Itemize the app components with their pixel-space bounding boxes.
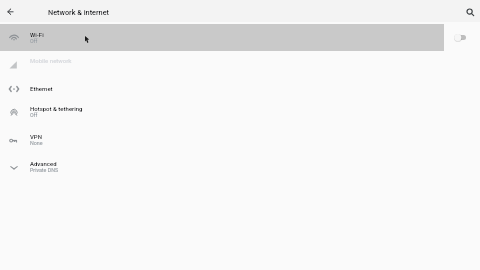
staticText: Advanced	[30, 160, 57, 167]
button[interactable]: Wi-Fi on/off	[452, 31, 470, 44]
button[interactable]: Advanced	[0, 153, 480, 180]
button[interactable]: Navigate up	[7, 8, 14, 15]
staticText: Off	[30, 38, 38, 44]
staticText: Off	[30, 112, 38, 118]
button[interactable]: Wi-Fi	[0, 24, 480, 51]
staticText: None	[30, 140, 43, 146]
staticText: Hotspot & tethering	[30, 105, 83, 112]
button[interactable]: Hotspot & tethering	[0, 98, 480, 125]
staticText: VPN	[30, 133, 42, 140]
button[interactable]: Search settings	[466, 8, 475, 17]
staticText: Mobile network	[30, 57, 72, 64]
staticText: Private DNS	[30, 167, 59, 173]
button[interactable]: Ethernet	[0, 75, 480, 102]
staticText: Network & internet	[48, 8, 110, 17]
staticText: Wi-Fi	[30, 31, 44, 38]
staticText: Ethernet	[30, 85, 53, 92]
button[interactable]: Mobile network	[0, 50, 480, 77]
button[interactable]: VPN	[0, 126, 480, 153]
